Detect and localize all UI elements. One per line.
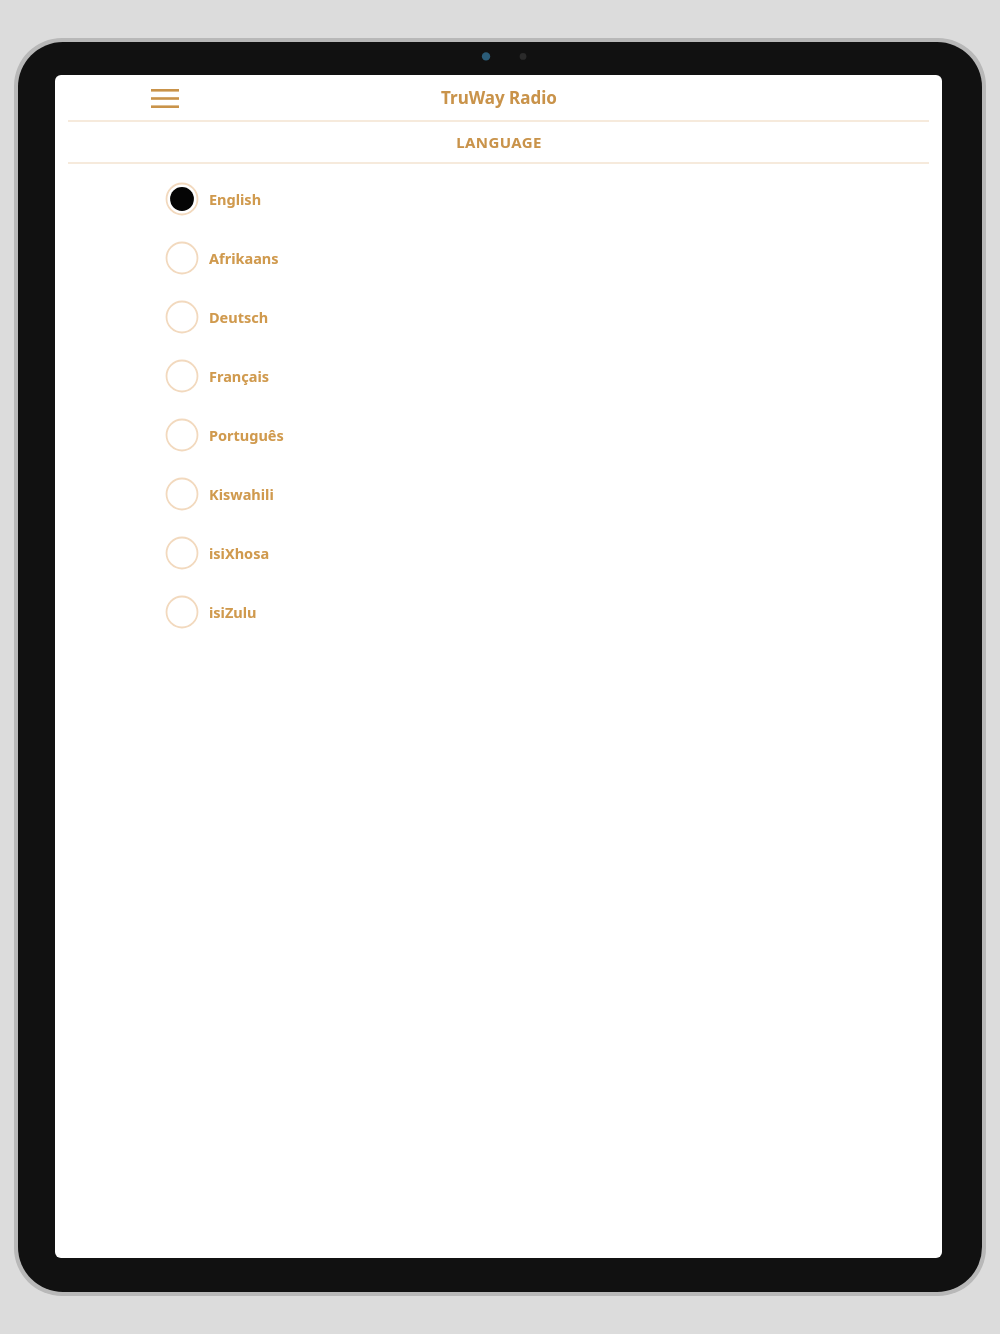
button[interactable]: isiXhosa <box>55 523 942 582</box>
button[interactable]: Kiswahili <box>55 464 942 523</box>
staticText: LANGUAGE <box>456 132 542 152</box>
button[interactable]: Open navigation menu <box>145 78 185 118</box>
staticText: Afrikaans <box>209 248 279 268</box>
button[interactable]: English <box>55 169 942 228</box>
staticText: isiZulu <box>209 602 257 622</box>
staticText: Português <box>209 425 284 445</box>
staticText: English <box>209 189 262 209</box>
staticText: Deutsch <box>209 307 269 327</box>
staticText: Français <box>209 366 270 386</box>
button[interactable]: Deutsch <box>55 287 942 346</box>
button[interactable]: Português <box>55 405 942 464</box>
button[interactable]: isiZulu <box>55 582 942 641</box>
button[interactable]: Afrikaans <box>55 228 942 287</box>
staticText: isiXhosa <box>209 543 270 563</box>
button[interactable]: Français <box>55 346 942 405</box>
staticText: Kiswahili <box>209 484 274 504</box>
staticText: TruWay Radio <box>441 86 557 109</box>
